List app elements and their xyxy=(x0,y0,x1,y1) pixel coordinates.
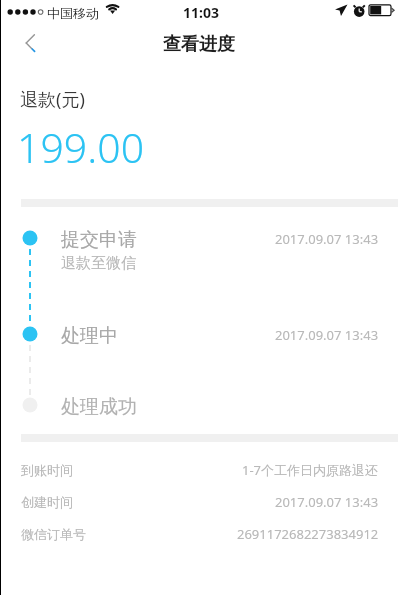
staticText: 退款(元) xyxy=(20,87,85,112)
staticText: 2017.09.07 13:43 xyxy=(275,493,379,511)
button[interactable]: 微信订单号 xyxy=(0,518,398,550)
staticText: 创建时间 xyxy=(21,494,73,510)
staticText: 微信订单号 xyxy=(21,526,86,542)
staticText: 处理中 xyxy=(61,324,118,348)
staticText: 2017.09.07 13:43 xyxy=(275,230,379,248)
staticText: 中国移动 xyxy=(47,5,99,21)
staticText: 2691172682273834912 xyxy=(237,525,379,543)
staticText: 查看进度 xyxy=(163,33,235,56)
staticText: 1-7个工作日内原路退还 xyxy=(242,461,379,479)
staticText: 退款至微信 xyxy=(61,254,136,273)
staticText: 处理成功 xyxy=(61,395,137,419)
staticText: 提交申请 xyxy=(61,228,137,252)
staticText: 2017.09.07 13:43 xyxy=(275,326,379,344)
button[interactable]: 创建时间 xyxy=(0,486,398,518)
button[interactable]: 处理中 xyxy=(0,318,398,352)
staticText: 199.00 xyxy=(17,119,145,175)
button[interactable]: 到账时间 xyxy=(0,454,398,486)
button[interactable]: 提交申请 xyxy=(0,222,398,278)
button[interactable]: 处理成功 xyxy=(0,389,398,423)
staticText: 到账时间 xyxy=(21,462,73,478)
staticText: 11:03 xyxy=(183,3,219,22)
button[interactable]: Back xyxy=(0,24,48,64)
